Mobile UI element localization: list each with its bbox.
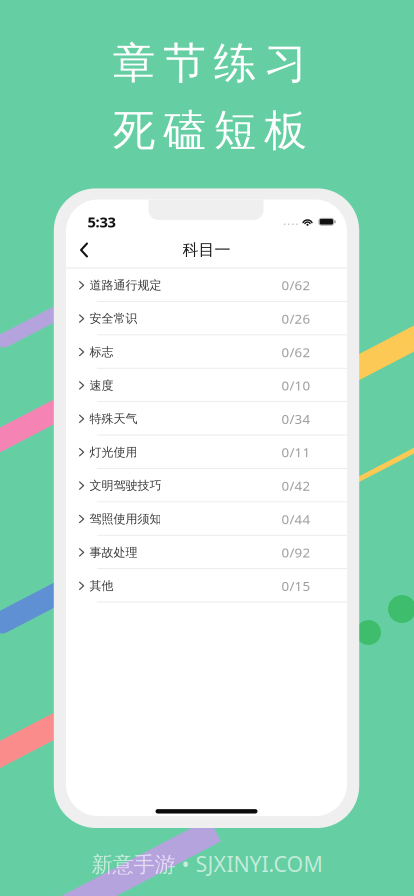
button[interactable]: 速度	[66, 369, 347, 402]
staticText: 速度	[89, 378, 113, 393]
staticText: 章节练习	[113, 37, 307, 89]
staticText: 0/34	[281, 410, 310, 428]
staticText: 标志	[89, 345, 113, 359]
button[interactable]: 驾照使用须知	[66, 502, 347, 536]
staticText: 0/26	[281, 310, 310, 327]
staticText: 安全常识	[89, 311, 137, 326]
staticText: 0/15	[281, 577, 310, 595]
staticText: 灯光使用	[89, 445, 137, 459]
staticText: 0/42	[281, 477, 310, 494]
staticText: 0/62	[281, 343, 310, 361]
staticText: 特殊天气	[89, 411, 137, 426]
staticText: 驾照使用须知	[89, 512, 161, 526]
button[interactable]: 其他	[66, 569, 347, 602]
staticText: 0/62	[281, 276, 310, 294]
button[interactable]: 事故处理	[66, 536, 347, 569]
button[interactable]: 安全常识	[66, 302, 347, 335]
staticText: 文明驾驶技巧	[89, 478, 161, 493]
staticText: 其他	[89, 578, 113, 593]
staticText: 5:33	[87, 212, 115, 231]
staticText: 新意手游 • SJXINYI.COM	[91, 850, 322, 878]
button[interactable]: 文明驾驶技巧	[66, 469, 347, 502]
button[interactable]: 灯光使用	[66, 435, 347, 469]
staticText: 死磕短板	[113, 104, 307, 157]
staticText: 0/11	[281, 443, 310, 461]
staticText: 道路通行规定	[89, 278, 161, 292]
button[interactable]: 特殊天气	[66, 402, 347, 435]
staticText: 0/10	[281, 376, 310, 394]
staticText: 科目一	[182, 240, 230, 260]
staticText: 0/44	[281, 510, 310, 528]
staticText: 0/92	[281, 543, 310, 561]
button[interactable]: Back	[66, 234, 102, 266]
staticText: 事故处理	[89, 545, 137, 560]
button[interactable]: 标志	[66, 335, 347, 369]
button[interactable]: 道路通行规定	[66, 268, 347, 302]
